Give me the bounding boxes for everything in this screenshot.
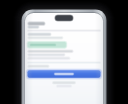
button[interactable]: Phone mockup showing a form with a confi… bbox=[0, 0, 128, 104]
